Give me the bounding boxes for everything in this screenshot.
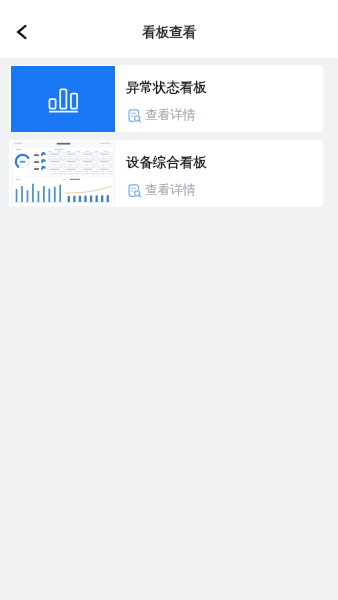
staticText: 查看详情 (145, 107, 196, 123)
staticText: 看板查看 (142, 24, 196, 41)
button[interactable]: 异常状态看板 (9, 65, 323, 132)
button[interactable]: Back (4, 14, 40, 50)
staticText: 查看详情 (145, 182, 196, 198)
button[interactable]: 设备综合看板 (9, 140, 323, 207)
staticText: 异常状态看板 (126, 79, 207, 96)
staticText: 设备综合看板 (126, 154, 207, 171)
